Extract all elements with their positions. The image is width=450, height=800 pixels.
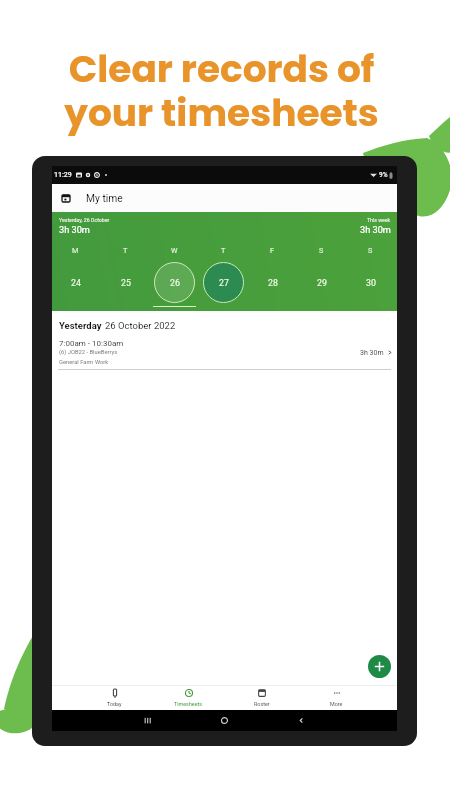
- staticText: 26: [170, 278, 180, 288]
- staticText: 28: [268, 278, 278, 288]
- button[interactable]: 26: [154, 262, 195, 303]
- button[interactable]: 24: [55, 262, 96, 303]
- staticText: 7:00am - 10:30am: [59, 339, 124, 348]
- staticText: S: [319, 246, 324, 255]
- button[interactable]: 25: [105, 262, 146, 303]
- staticText: T: [221, 246, 226, 255]
- staticText: M: [72, 246, 79, 255]
- button[interactable]: 7:00am - 10:30am: [52, 339, 397, 366]
- staticText: 29: [317, 278, 327, 288]
- button[interactable]: 29: [301, 262, 342, 303]
- button[interactable]: 28: [252, 262, 293, 303]
- button[interactable]: Back: [263, 710, 340, 731]
- button[interactable]: Roster: [225, 685, 299, 710]
- button[interactable]: 27: [203, 262, 244, 303]
- other: Calendar: [62, 194, 70, 202]
- staticText: 3h 30m: [360, 224, 391, 235]
- staticText: General Farm Work: [59, 359, 109, 366]
- staticText: 26 October 2022: [105, 320, 176, 331]
- staticText: This week: [367, 217, 391, 223]
- staticText: (6) JOB22 - BlueBerrys: [59, 349, 118, 356]
- button[interactable]: Recents: [109, 710, 186, 731]
- staticText: 11:29: [54, 171, 72, 179]
- staticText: 9%: [379, 171, 388, 179]
- staticText: Roster: [254, 701, 270, 707]
- button[interactable]: More: [299, 685, 373, 710]
- staticText: F: [270, 246, 275, 255]
- staticText: More: [330, 701, 343, 707]
- staticText: W: [171, 246, 178, 255]
- staticText: Yesterday: [59, 320, 102, 331]
- staticText: 24: [71, 278, 81, 288]
- staticText: 3h 30m: [360, 349, 384, 357]
- staticText: 30: [366, 278, 376, 288]
- staticText: Timesheets: [174, 701, 203, 707]
- staticText: Clear records of your timesheets: [64, 43, 379, 139]
- staticText: Today: [107, 701, 122, 707]
- staticText: 27: [219, 278, 229, 288]
- staticText: 25: [121, 278, 131, 288]
- staticText: S: [368, 246, 373, 255]
- staticText: Yesterday, 26 October: [59, 217, 110, 223]
- button[interactable]: Timesheets: [151, 685, 225, 710]
- staticText: T: [123, 246, 128, 255]
- button[interactable]: Calendar: [52, 184, 397, 212]
- staticText: My time: [86, 192, 123, 204]
- button[interactable]: Home: [186, 710, 263, 731]
- staticText: 3h 30m: [59, 224, 90, 235]
- button[interactable]: Add timesheet: [368, 655, 391, 678]
- button[interactable]: 30: [350, 262, 391, 303]
- button[interactable]: Today: [77, 685, 151, 710]
